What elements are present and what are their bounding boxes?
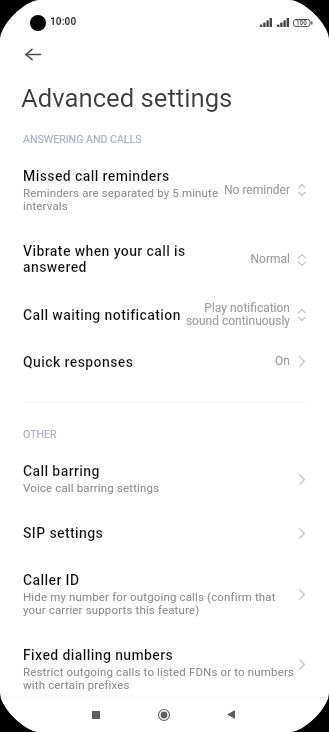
staticText: On (260, 355, 290, 368)
button[interactable]: Home (144, 698, 184, 732)
staticText: Normal (222, 253, 290, 266)
button[interactable]: Back (211, 698, 251, 732)
button[interactable]: Call waiting notification (0, 291, 329, 338)
staticText: Call waiting notification (23, 307, 181, 323)
button[interactable]: SIP settings (0, 510, 329, 557)
staticText: Vibrate when your call is answered (23, 243, 223, 275)
staticText: Reminders are separated by 5 minute inte… (23, 187, 223, 213)
button[interactable]: Caller ID (0, 557, 329, 632)
staticText: Play notification sound continuously (185, 302, 290, 328)
staticText: No reminder (222, 184, 290, 197)
staticText: Quick responses (23, 354, 134, 370)
button[interactable]: Fixed dialling numbers (0, 632, 329, 698)
staticText: Caller ID (23, 572, 80, 588)
button[interactable]: Quick responses (0, 338, 329, 385)
button[interactable]: Vibrate when your call is answered (0, 228, 329, 291)
button[interactable]: Missed call reminders (0, 153, 329, 229)
staticText: Call barring (23, 463, 100, 479)
button[interactable]: Recent apps (76, 698, 116, 732)
button[interactable]: Call barring (0, 448, 329, 510)
staticText: ANSWERING AND CALLS (23, 133, 142, 145)
staticText: Missed call reminders (23, 168, 170, 184)
staticText: OTHER (23, 428, 57, 440)
staticText: Voice call barring settings (23, 482, 160, 495)
staticText: 100 (296, 20, 307, 27)
button[interactable]: Navigate up (18, 39, 48, 69)
staticText: Hide my number for outgoing calls (confi… (23, 591, 294, 617)
staticText: SIP settings (23, 525, 104, 541)
staticText: Advanced settings (21, 83, 233, 113)
staticText: Fixed dialling numbers (23, 647, 174, 663)
staticText: Restrict outgoing calls to listed FDNs o… (23, 666, 301, 692)
staticText: 10:00 (50, 16, 77, 28)
